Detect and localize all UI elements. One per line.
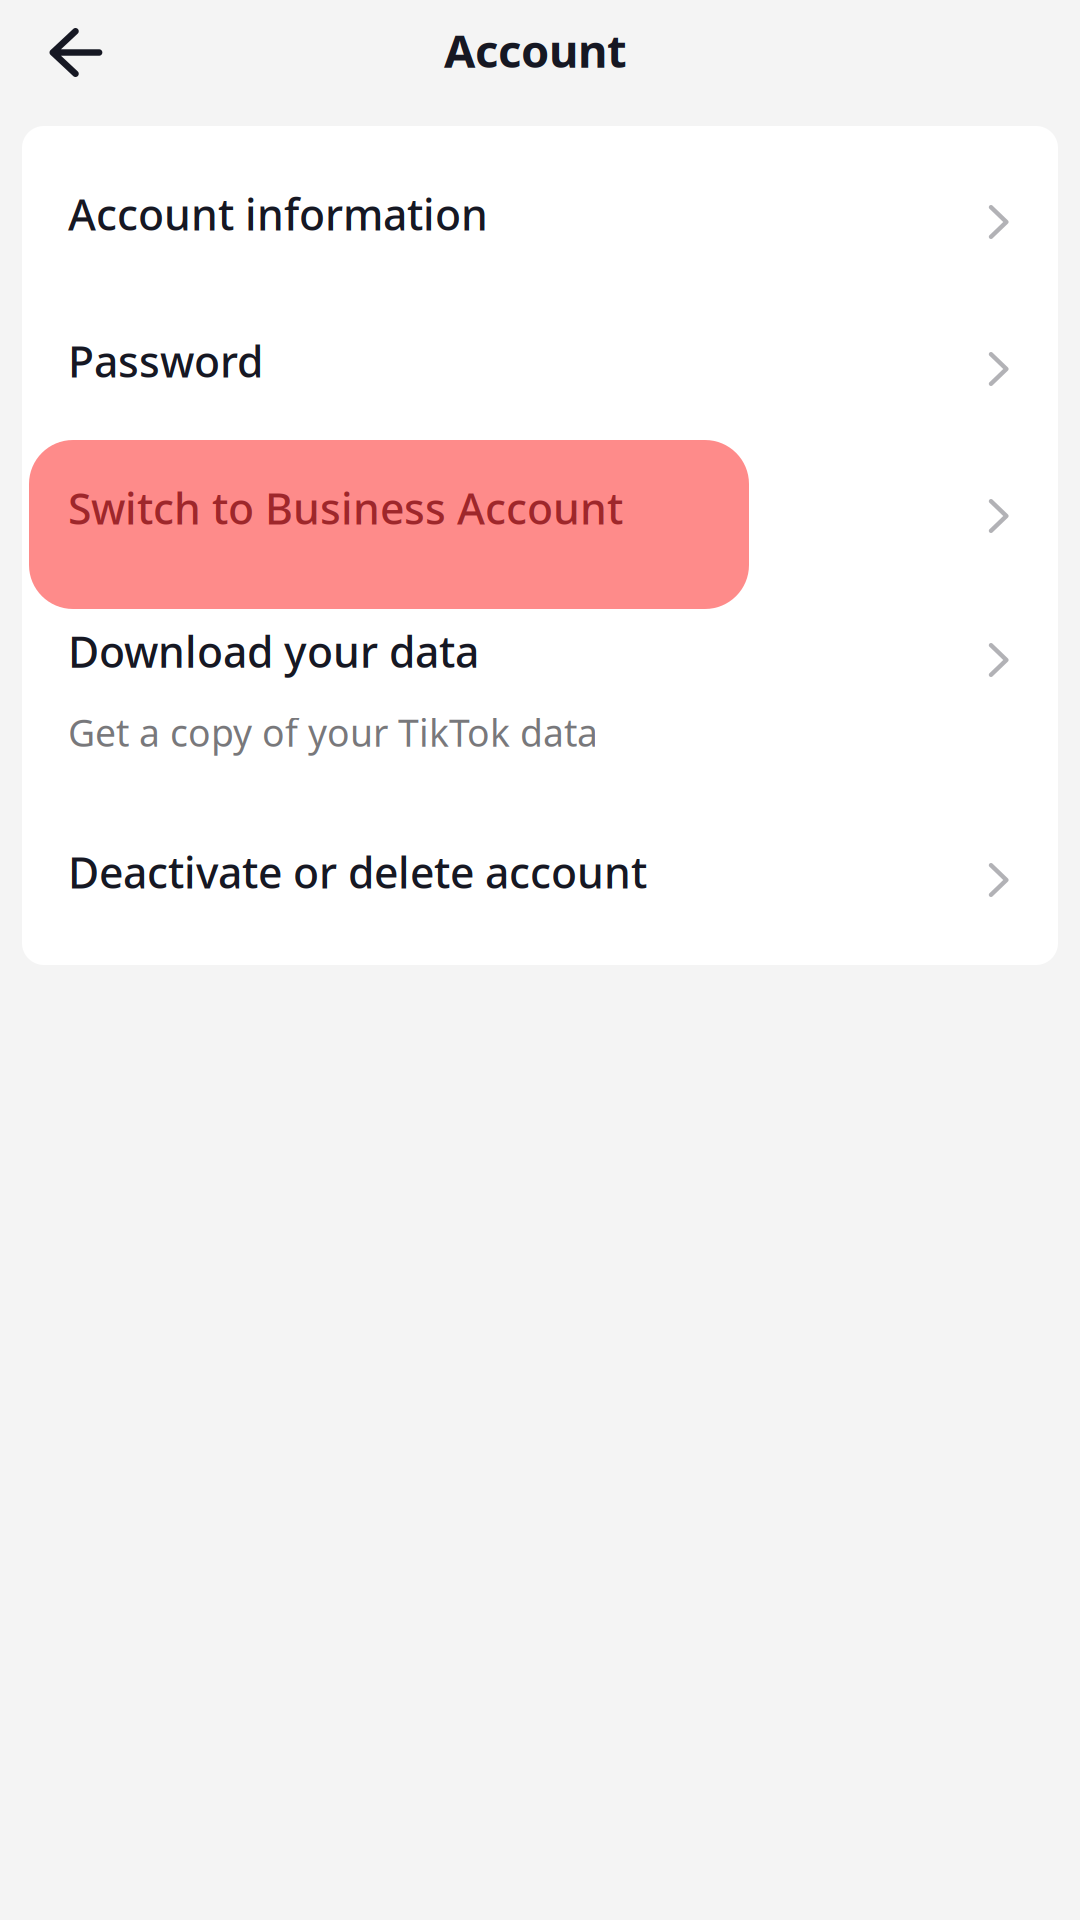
button[interactable]: Download your data [22, 581, 1058, 798]
staticText: Get a copy of your TikTok data [68, 707, 598, 757]
staticText: Password [68, 333, 263, 389]
staticText: Switch to Business Account [68, 480, 623, 536]
button[interactable]: Account information [22, 140, 1058, 287]
button[interactable]: Password [22, 287, 1058, 434]
staticText: Account [444, 20, 627, 80]
staticText: Download your data [68, 623, 479, 680]
staticText: Deactivate or delete account [68, 844, 647, 900]
button[interactable]: Switch to Business Account [22, 434, 1058, 581]
button[interactable]: Back [0, 0, 132, 104]
staticText: Account information [68, 186, 488, 242]
button[interactable]: Deactivate or delete account [22, 798, 1058, 945]
